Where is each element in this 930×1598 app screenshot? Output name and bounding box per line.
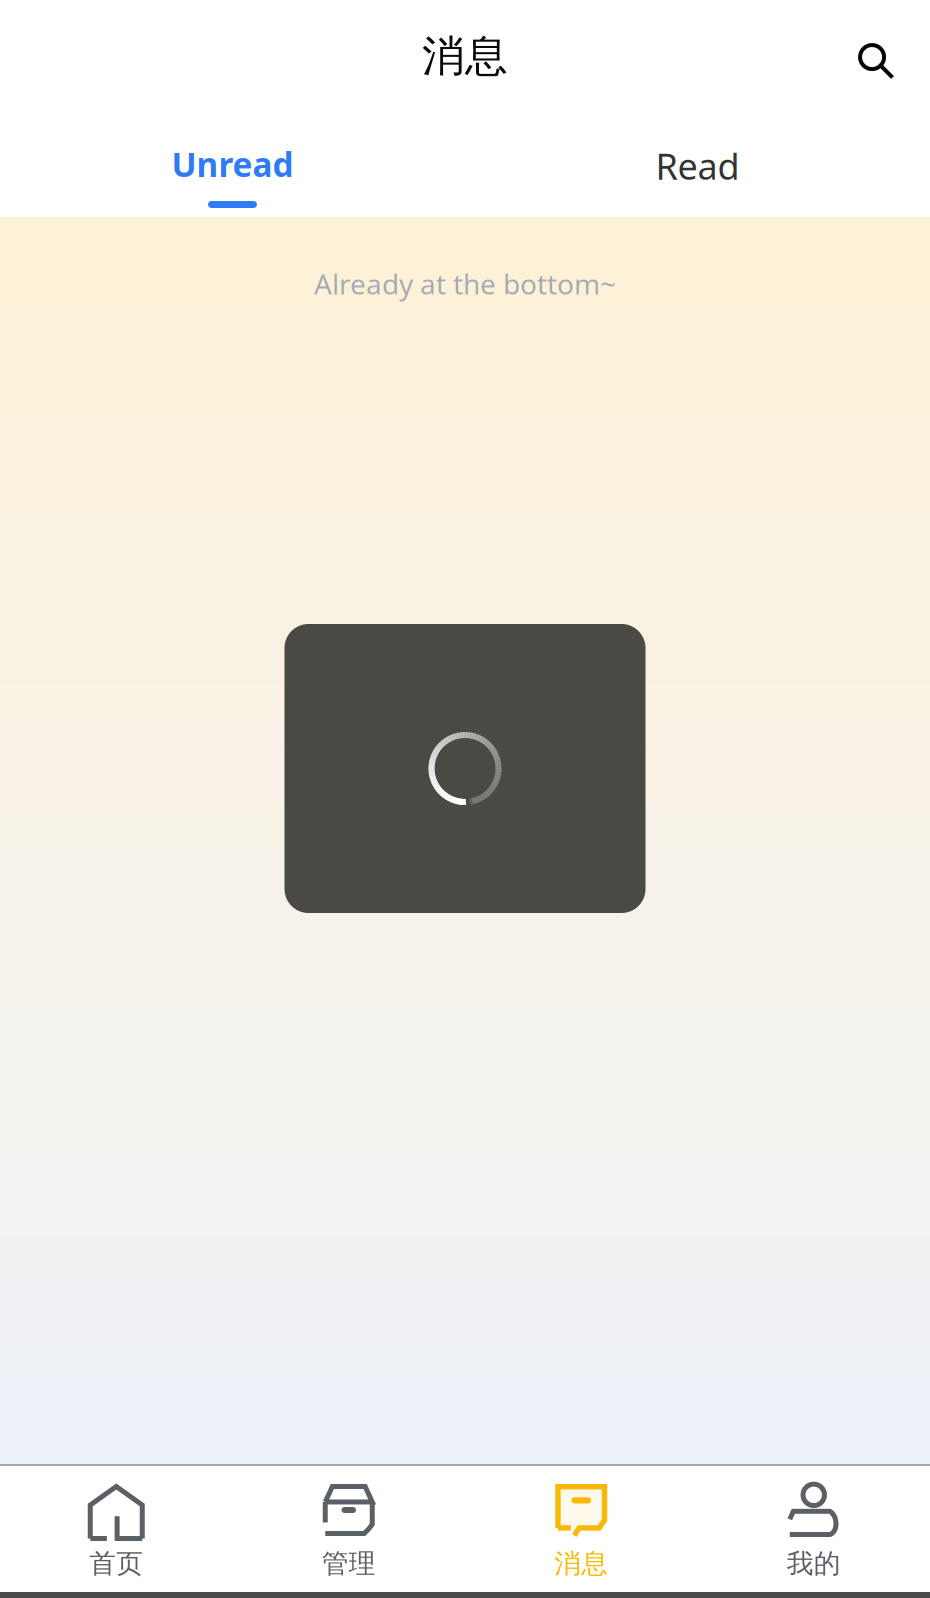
button[interactable]: 首页 xyxy=(0,1466,232,1592)
button[interactable]: Read xyxy=(465,130,930,217)
button[interactable]: 管理 xyxy=(232,1466,465,1592)
button[interactable]: Search xyxy=(860,45,930,79)
staticText: Read xyxy=(655,142,739,190)
staticText: 管理 xyxy=(322,1547,376,1580)
button[interactable]: Unread xyxy=(0,130,465,217)
staticText: Already at the bottom~ xyxy=(314,265,616,302)
staticText: 首页 xyxy=(89,1547,143,1580)
staticText: 消息 xyxy=(422,30,508,82)
button[interactable]: 消息 xyxy=(465,1466,697,1592)
staticText: 消息 xyxy=(554,1547,608,1580)
staticText: Unread xyxy=(171,142,293,186)
button[interactable]: 我的 xyxy=(697,1466,930,1592)
staticText: 我的 xyxy=(787,1547,841,1580)
